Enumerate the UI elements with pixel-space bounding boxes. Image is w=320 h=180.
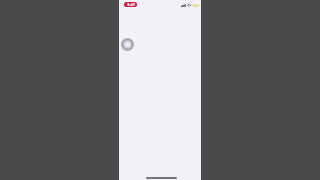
button[interactable]: 9:41: [124, 2, 137, 7]
button[interactable]: Loading: [121, 38, 134, 51]
other: System status icons: [181, 3, 199, 8]
button[interactable]: Home: [146, 177, 177, 179]
staticText: 9:41: [127, 2, 135, 7]
